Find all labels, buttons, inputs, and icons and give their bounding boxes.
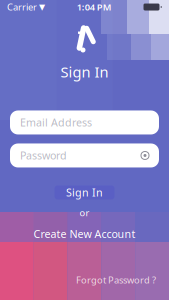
button[interactable]: Sign In	[54, 185, 114, 199]
staticText: 1:04 PM	[77, 1, 112, 13]
button[interactable]: Forgot Password ?	[72, 272, 160, 288]
button[interactable]: Email Address	[10, 110, 159, 134]
staticText: Carrier	[7, 1, 37, 13]
staticText: Sign In	[60, 62, 108, 81]
staticText: Sign In	[66, 185, 103, 200]
staticText: Create New Account	[33, 227, 135, 241]
staticText: ▼	[39, 2, 45, 12]
button[interactable]: Password	[10, 143, 159, 167]
button[interactable]: Create New Account	[27, 225, 141, 243]
staticText: Email Address	[20, 115, 92, 130]
staticText: Password	[20, 148, 67, 163]
staticText: Forgot Password ?	[76, 274, 156, 286]
staticText: or	[79, 206, 89, 219]
